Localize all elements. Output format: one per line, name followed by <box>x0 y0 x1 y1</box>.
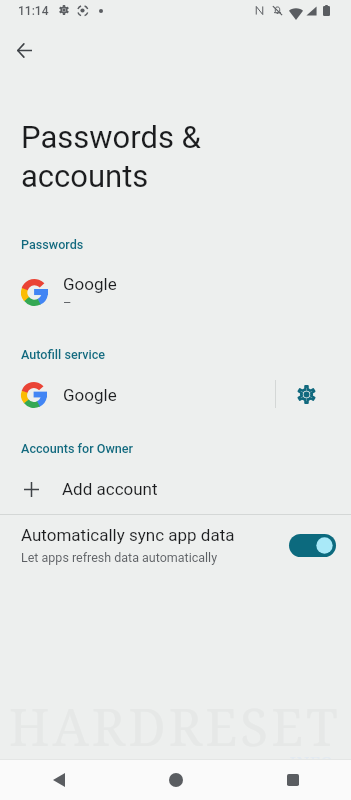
button[interactable]: Automatically sync app data <box>0 515 351 575</box>
button[interactable]: Home <box>117 760 234 800</box>
button[interactable]: Back <box>4 30 44 70</box>
staticText: Accounts for Owner <box>21 441 134 456</box>
staticText: Passwords & accounts <box>21 119 241 194</box>
staticText: Add account <box>62 479 158 499</box>
staticText: 11:14 <box>18 4 49 18</box>
staticText: .INFO <box>285 751 334 774</box>
staticText: Passwords <box>21 237 84 252</box>
button[interactable]: Google <box>0 264 351 320</box>
button[interactable]: Back <box>0 760 117 800</box>
staticText: Autofill service <box>21 347 106 362</box>
button[interactable]: Autofill settings <box>276 368 336 420</box>
button[interactable]: Recent apps <box>234 760 351 800</box>
staticText: Google <box>63 274 117 294</box>
staticText: Let apps refresh data automatically <box>21 550 218 565</box>
staticText: Automatically sync app data <box>21 525 235 545</box>
staticText: – <box>63 295 72 310</box>
button[interactable]: Add account <box>0 466 351 512</box>
button[interactable]: Google <box>0 369 275 421</box>
staticText: Google <box>63 385 117 405</box>
